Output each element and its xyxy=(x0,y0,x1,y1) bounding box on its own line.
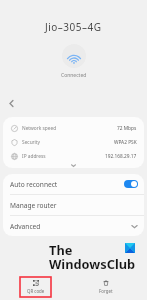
staticText: 192.168.29.17 xyxy=(105,153,137,160)
staticText: WPA2 PSK xyxy=(114,139,137,146)
button[interactable]: Auto reconnect xyxy=(3,174,144,194)
staticText: Auto reconnect xyxy=(10,180,58,189)
staticText: Advanced xyxy=(10,222,41,231)
staticText: QR code xyxy=(27,288,45,294)
staticText: Network speed xyxy=(22,125,57,132)
staticText: The xyxy=(49,241,73,258)
staticText: Forget xyxy=(99,288,113,294)
staticText: Security xyxy=(22,139,41,146)
staticText: 72 Mbps xyxy=(117,125,137,132)
staticText: Connected xyxy=(61,72,87,79)
button[interactable]: Forget xyxy=(90,277,121,297)
button[interactable]: Manage router xyxy=(3,195,144,215)
staticText: IP address xyxy=(22,153,46,160)
button[interactable]: Back xyxy=(3,95,20,112)
staticText: WindowsClub xyxy=(49,255,136,272)
button[interactable]: Advanced xyxy=(3,216,144,236)
button[interactable]: QR code xyxy=(20,277,51,297)
staticText: Manage router xyxy=(10,201,57,210)
staticText: Jio–305–4G xyxy=(45,20,102,34)
